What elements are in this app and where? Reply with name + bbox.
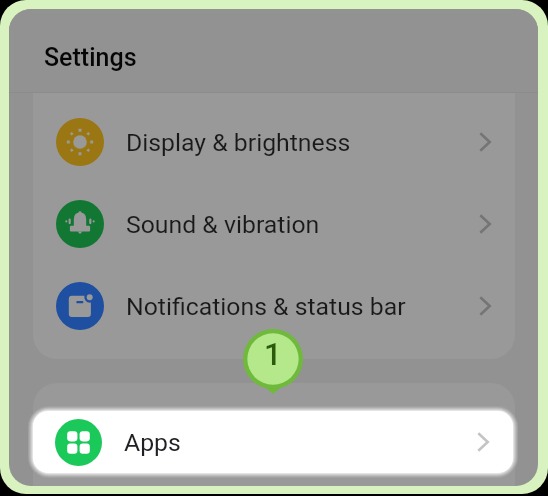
staticText: Settings [44, 43, 137, 72]
staticText: Apps [124, 428, 181, 457]
staticText: Sound & vibration [126, 210, 320, 239]
staticText: Notifications & status bar [126, 292, 406, 321]
staticText: 1 [264, 336, 282, 372]
button[interactable]: Display & brightness [56, 109, 515, 175]
button[interactable]: Notifications & status bar [56, 273, 515, 339]
staticText: Display & brightness [126, 128, 351, 157]
button[interactable]: Sound & vibration [56, 191, 515, 257]
button[interactable]: Apps [33, 411, 513, 473]
